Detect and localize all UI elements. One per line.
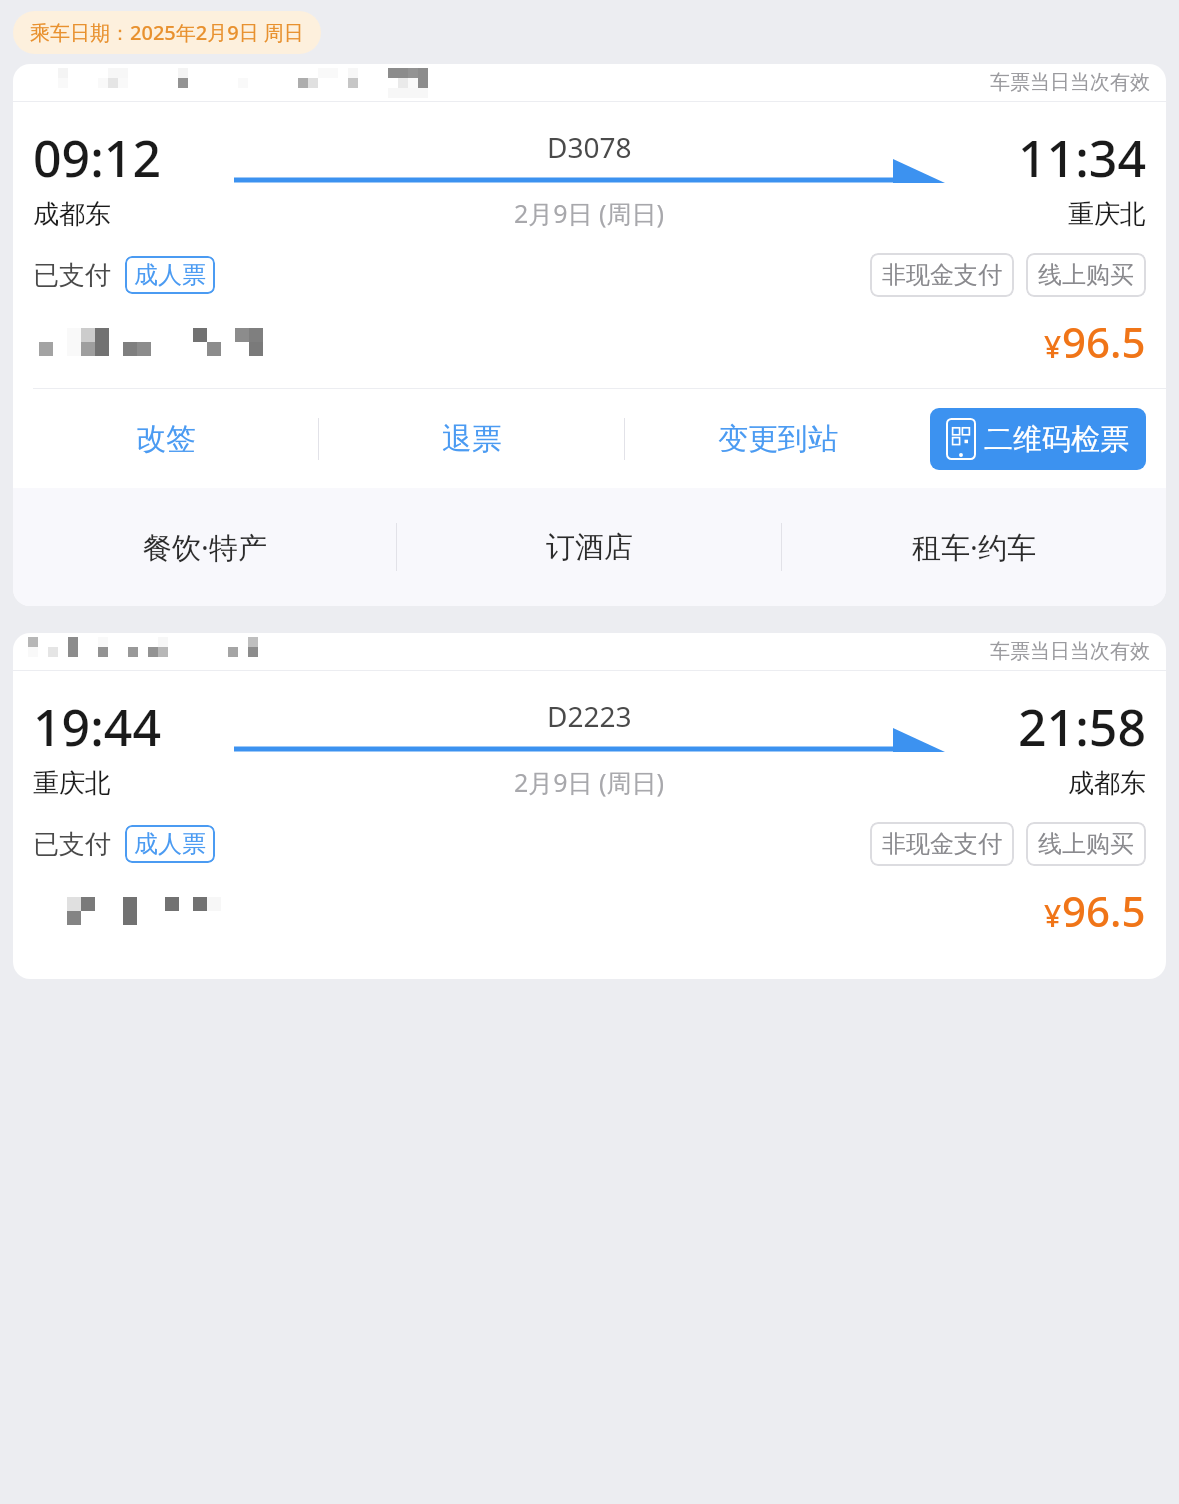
staticText: 96.5 xyxy=(1062,313,1146,370)
staticText: 09:12 xyxy=(33,124,161,192)
staticText: 乘车日期：2025年2月9日 周日 xyxy=(30,19,304,46)
button[interactable]: 线上购买 xyxy=(1026,822,1146,866)
button[interactable]: 非现金支付 xyxy=(870,822,1014,866)
button[interactable]: 租车·约车 xyxy=(782,488,1166,606)
button[interactable]: 餐饮·特产 xyxy=(13,488,396,606)
staticText: 2月9日 (周日) xyxy=(514,765,665,799)
staticText: 成都东 xyxy=(1068,767,1146,800)
staticText: 二维码检票 xyxy=(984,421,1129,458)
staticText: 改签 xyxy=(136,420,196,458)
staticText: 订酒店 xyxy=(546,529,633,566)
button[interactable]: 改签 xyxy=(13,389,318,488)
staticText: 已支付 xyxy=(33,828,111,861)
button[interactable]: 成人票 xyxy=(125,256,215,294)
staticText: ¥ xyxy=(1044,895,1062,936)
button[interactable]: 成人票 xyxy=(125,825,215,863)
staticText: 非现金支付 xyxy=(882,829,1002,859)
staticText: 车票当日当次有效 xyxy=(990,639,1150,664)
other: 二维码检票 xyxy=(947,419,975,459)
button[interactable]: 二维码检票 xyxy=(930,408,1146,470)
staticText: 11:34 xyxy=(1018,124,1146,192)
staticText: 成人票 xyxy=(134,260,206,290)
staticText: 已支付 xyxy=(33,259,111,292)
staticText: 车票当日当次有效 xyxy=(990,70,1150,95)
staticText: 线上购买 xyxy=(1038,260,1134,290)
button[interactable]: 线上购买 xyxy=(1026,253,1146,297)
staticText: 21:58 xyxy=(1018,693,1146,761)
button[interactable]: 乘车日期：2025年2月9日 周日 xyxy=(13,11,321,54)
staticText: 餐饮·特产 xyxy=(143,527,267,567)
staticText: 线上购买 xyxy=(1038,829,1134,859)
button[interactable]: 变更到站 xyxy=(625,389,930,488)
staticText: 重庆北 xyxy=(33,767,111,800)
staticText: 退票 xyxy=(442,420,502,458)
button[interactable]: 退票 xyxy=(319,389,624,488)
staticText: 变更到站 xyxy=(718,420,838,458)
button[interactable]: 订酒店 xyxy=(397,488,781,606)
staticText: 19:44 xyxy=(33,693,161,761)
staticText: 2月9日 (周日) xyxy=(514,196,665,230)
staticText: 成都东 xyxy=(33,198,111,231)
staticText: 重庆北 xyxy=(1068,198,1146,231)
button[interactable]: 车票当日当次有效 xyxy=(13,633,1166,979)
staticText: D2223 xyxy=(547,697,632,735)
staticText: ¥ xyxy=(1044,326,1062,367)
staticText: D3078 xyxy=(547,128,632,166)
button[interactable]: 车票当日当次有效 xyxy=(13,64,1166,606)
staticText: 非现金支付 xyxy=(882,260,1002,290)
staticText: 96.5 xyxy=(1062,882,1146,939)
staticText: 租车·约车 xyxy=(912,527,1036,567)
button[interactable]: 非现金支付 xyxy=(870,253,1014,297)
staticText: 成人票 xyxy=(134,829,206,859)
